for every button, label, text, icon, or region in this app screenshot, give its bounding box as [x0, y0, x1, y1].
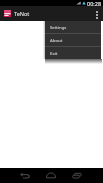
button[interactable]: Settings [45, 21, 101, 33]
staticText: TeNot [14, 10, 30, 17]
staticText: 00:28 [87, 0, 102, 6]
staticText: About [50, 37, 63, 43]
button[interactable]: More options [91, 6, 103, 21]
button[interactable]: Exit [45, 47, 101, 59]
staticText: Exit [50, 50, 58, 56]
button[interactable]: Home [38, 168, 64, 183]
staticText: Settings [50, 24, 67, 30]
button[interactable]: About [45, 34, 101, 46]
button[interactable]: Recent apps [64, 168, 90, 183]
button[interactable]: Back [12, 168, 38, 183]
